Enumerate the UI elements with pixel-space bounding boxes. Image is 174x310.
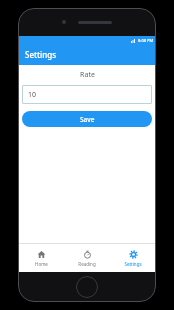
button[interactable]: 10 xyxy=(22,85,152,104)
staticText: Settings xyxy=(25,49,57,60)
staticText: Home xyxy=(35,261,48,267)
staticText: Reading xyxy=(78,261,96,267)
staticText: 10 xyxy=(28,90,37,100)
staticText: Save xyxy=(80,115,95,124)
staticText: Rate xyxy=(80,70,95,80)
staticText: Settings xyxy=(124,261,142,267)
staticText: 8:08 PM xyxy=(138,38,154,43)
button[interactable]: Settings xyxy=(110,244,156,272)
button[interactable]: Reading xyxy=(64,244,110,272)
button[interactable]: Save xyxy=(22,111,152,127)
button[interactable]: Home xyxy=(18,244,64,272)
